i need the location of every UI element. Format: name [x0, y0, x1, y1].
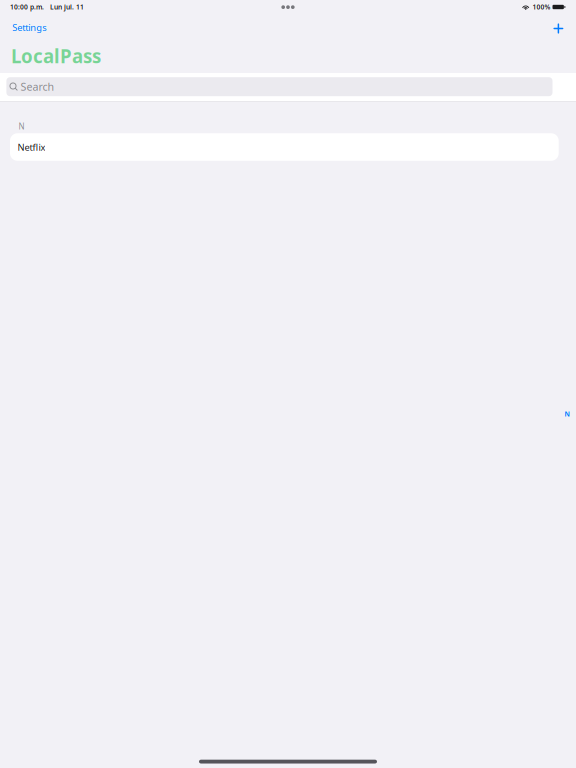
staticText: Netflix [17, 141, 45, 153]
staticText: N [19, 121, 25, 132]
button[interactable]: Jump to section N [560, 408, 573, 419]
staticText: LocalPass [11, 43, 101, 68]
staticText: Settings [12, 21, 46, 34]
button[interactable]: Search [6, 77, 552, 96]
staticText: Lun jul. 11 [50, 3, 84, 11]
staticText: Search [21, 80, 55, 94]
button[interactable]: Add [547, 18, 569, 37]
staticText: N [564, 410, 569, 418]
staticText: 10:00 p.m. [10, 3, 44, 11]
button[interactable]: Netflix [10, 133, 559, 161]
button[interactable]: Settings [6, 18, 52, 37]
staticText: 100% [532, 3, 550, 11]
